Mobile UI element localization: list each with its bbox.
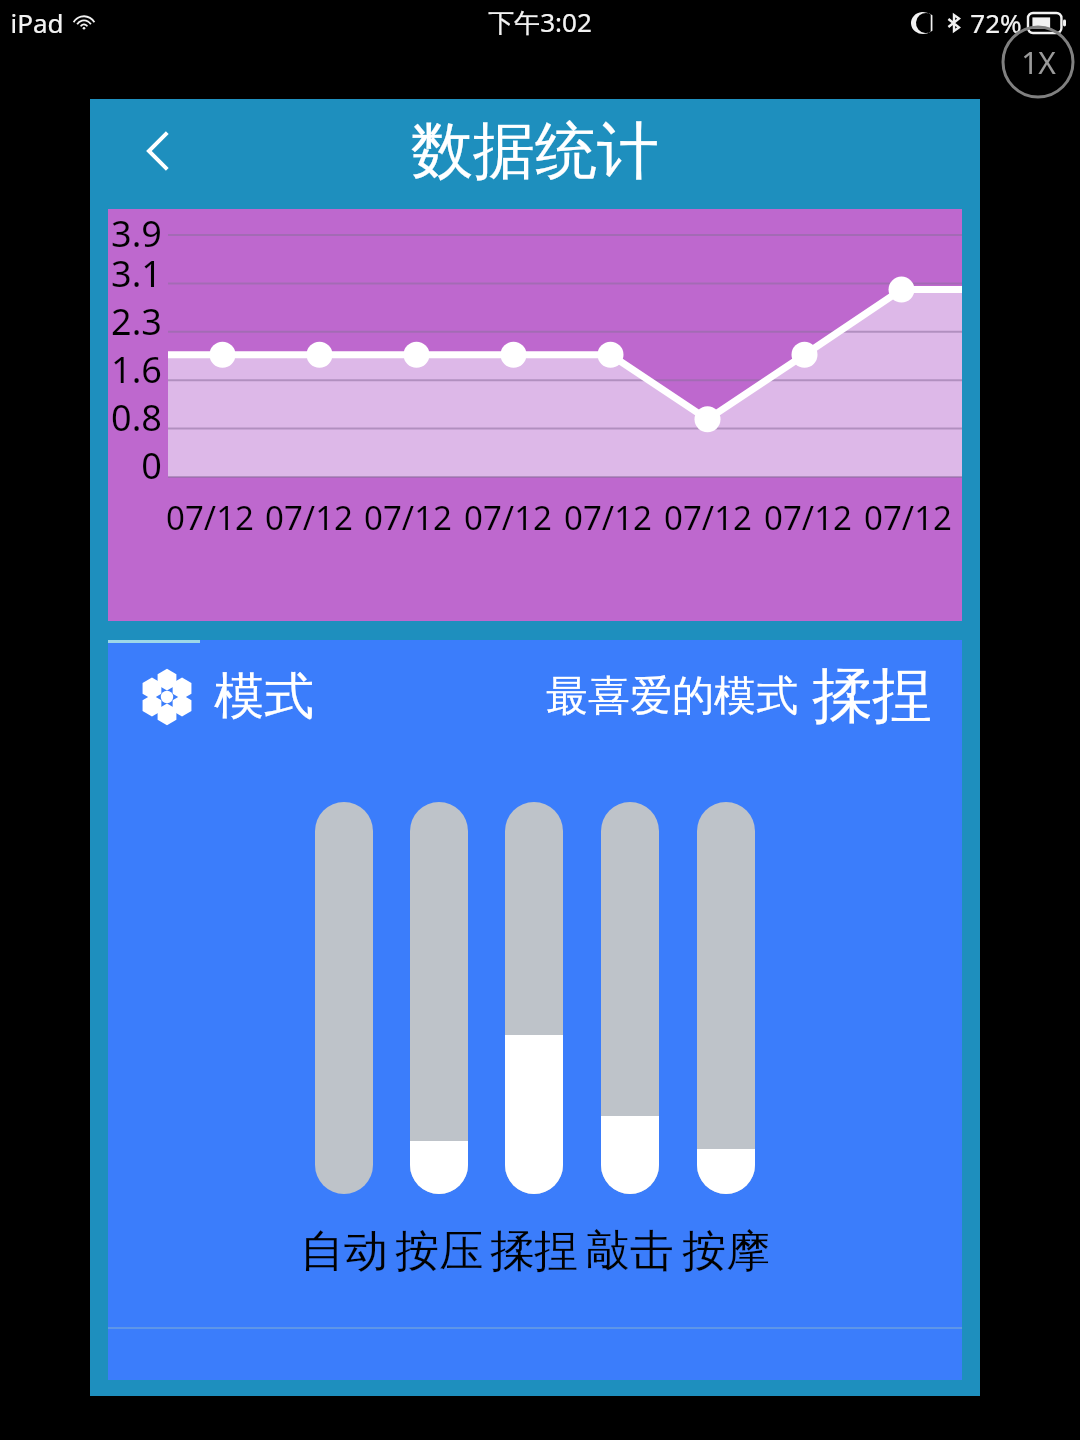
staticText: 揉捏 <box>490 1224 578 1279</box>
staticText: 0.8 <box>111 393 162 441</box>
staticText: 揉捏 <box>812 658 932 734</box>
staticText: 07/12 <box>664 495 752 540</box>
staticText: 07/12 <box>864 495 952 540</box>
staticText: 1X <box>1021 42 1056 83</box>
staticText: 72% <box>970 5 1022 40</box>
button[interactable] <box>601 802 659 1194</box>
staticText: 2.3 <box>111 297 162 345</box>
button[interactable] <box>505 802 563 1194</box>
staticText: 数据统计 <box>411 112 659 190</box>
staticText: 模式 <box>214 665 314 728</box>
staticText: 3.1 <box>111 249 162 297</box>
button[interactable]: Zoom 1X <box>1003 27 1073 97</box>
button[interactable]: Back <box>130 122 188 180</box>
staticText: 07/12 <box>464 495 552 540</box>
staticText: 07/12 <box>364 495 452 540</box>
button[interactable]: Mode <box>136 666 198 728</box>
staticText: 07/12 <box>764 495 852 540</box>
staticText: 最喜爱的模式 <box>546 670 798 723</box>
button[interactable] <box>410 802 468 1194</box>
button[interactable] <box>697 802 755 1194</box>
staticText: iPad <box>10 5 64 40</box>
staticText: 07/12 <box>265 495 353 540</box>
staticText: 0 <box>141 441 162 489</box>
staticText: 敲击 <box>586 1224 674 1279</box>
button[interactable] <box>315 802 373 1194</box>
staticText: 自动 <box>300 1224 388 1279</box>
staticText: 07/12 <box>166 495 254 540</box>
staticText: 07/12 <box>564 495 652 540</box>
staticText: 按摩 <box>682 1224 770 1279</box>
staticText: 按压 <box>395 1224 483 1279</box>
staticText: 下午3:02 <box>488 4 592 40</box>
staticText: 3.9 <box>111 209 162 249</box>
button[interactable]: Mode <box>108 640 962 1380</box>
button[interactable]: 3.9 <box>108 209 962 621</box>
staticText: 1.6 <box>111 345 162 393</box>
